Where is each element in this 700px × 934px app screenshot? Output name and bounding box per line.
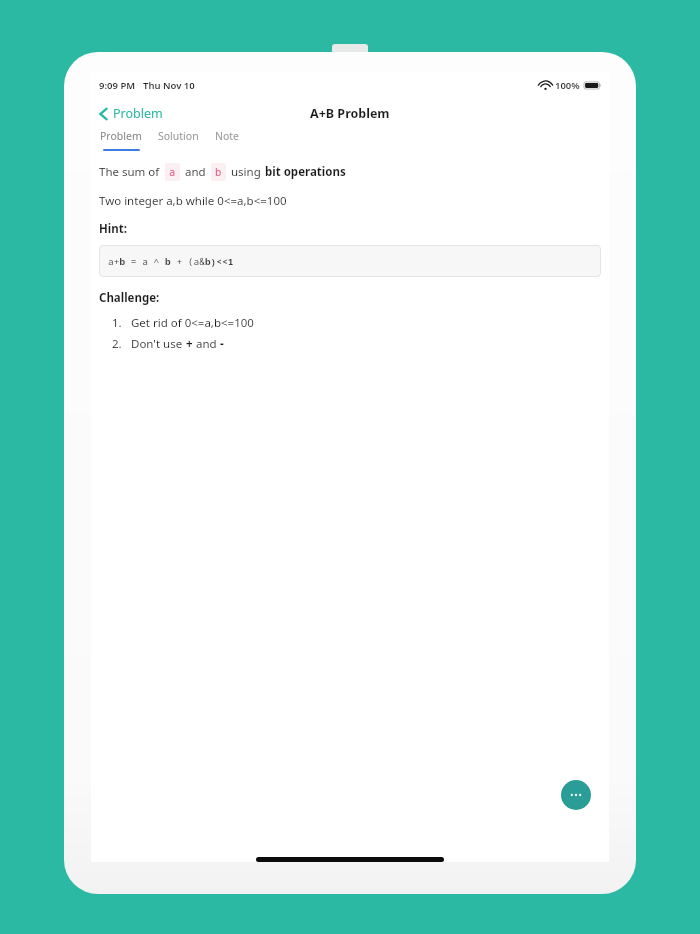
staticText: using: [231, 164, 261, 180]
staticText: Problem: [100, 129, 142, 143]
staticText: Thu Nov 10: [143, 79, 195, 92]
button[interactable]: More options: [561, 780, 591, 810]
button[interactable]: Note: [214, 128, 241, 150]
staticText: and: [185, 164, 206, 180]
staticText: 100%: [555, 79, 580, 92]
staticText: Solution: [158, 129, 199, 143]
staticText: bit operations: [265, 164, 346, 180]
button[interactable]: Problem: [99, 128, 143, 152]
staticText: Note: [215, 129, 240, 143]
staticText: a+b = a ^ b + (a&b)<<1: [108, 255, 234, 268]
button[interactable]: Problem: [91, 102, 171, 125]
staticText: A+B Problem: [310, 105, 390, 122]
button[interactable]: Solution: [157, 128, 200, 150]
staticText: Challenge:: [99, 290, 160, 306]
staticText: +: [186, 336, 193, 352]
staticText: 2.: [112, 336, 122, 352]
staticText: b: [215, 165, 222, 179]
staticText: Don't use: [131, 336, 183, 352]
staticText: Hint:: [99, 221, 127, 237]
staticText: The sum of: [99, 164, 160, 180]
staticText: 1.: [112, 315, 122, 331]
staticText: Two integer a,b while 0<=a,b<=100: [99, 193, 287, 209]
staticText: Problem: [113, 105, 163, 122]
staticText: a: [169, 165, 176, 179]
staticText: 9:09 PM: [99, 79, 136, 92]
staticText: -: [220, 336, 224, 352]
staticText: and: [196, 336, 217, 352]
staticText: Get rid of 0<=a,b<=100: [131, 315, 254, 331]
